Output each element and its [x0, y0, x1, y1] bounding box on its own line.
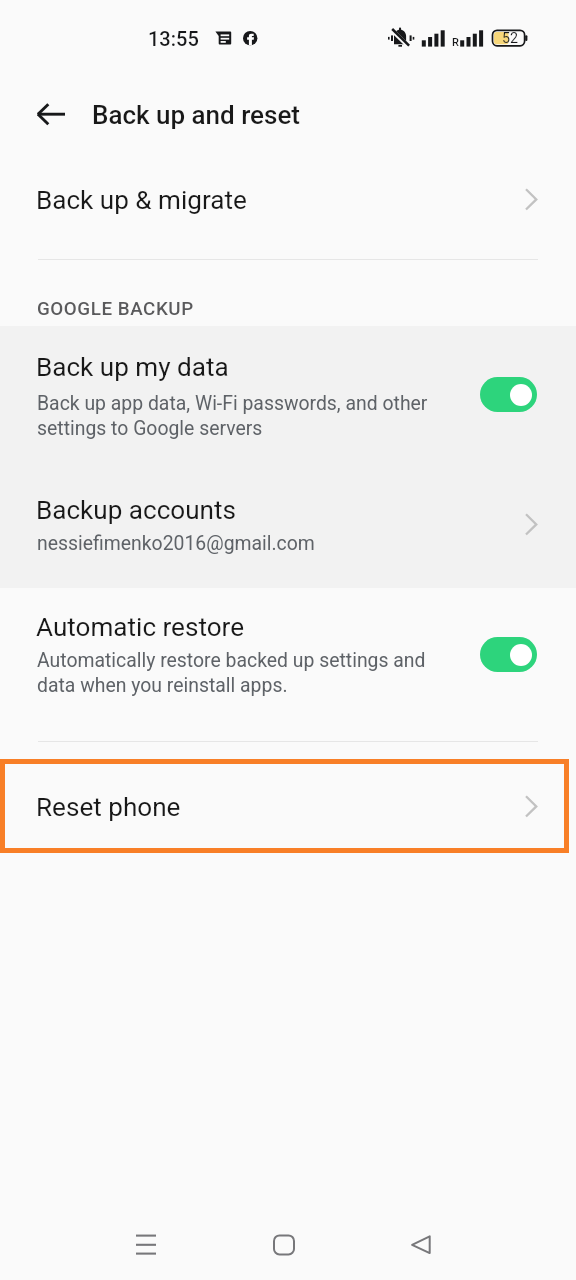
- staticText: Back up my data: [36, 352, 229, 383]
- staticText: Back up & migrate: [36, 185, 247, 216]
- button[interactable]: Backup accounts: [0, 478, 576, 574]
- button[interactable]: Back up & migrate: [0, 160, 576, 242]
- staticText: Back up and reset: [92, 100, 300, 130]
- button[interactable]: Navigate up: [28, 92, 74, 138]
- staticText: R: [452, 36, 459, 49]
- staticText: Reset phone: [36, 792, 181, 823]
- staticText: Automatically restore backed up settings…: [37, 647, 426, 697]
- button[interactable]: Toggle on: [480, 637, 537, 672]
- button[interactable]: Toggle on: [480, 377, 537, 412]
- staticText: 52: [502, 30, 519, 47]
- staticText: 13:55: [148, 27, 199, 50]
- button[interactable]: Recent apps: [114, 1213, 178, 1277]
- staticText: nessiefimenko2016@gmail.com: [37, 532, 315, 555]
- staticText: Backup accounts: [36, 495, 237, 526]
- button[interactable]: Back: [389, 1213, 453, 1277]
- button[interactable]: Back up my data: [0, 334, 576, 460]
- staticText: GOOGLE BACKUP: [37, 298, 194, 320]
- button[interactable]: Reset phone: [5, 764, 564, 848]
- button[interactable]: Home: [252, 1213, 316, 1277]
- staticText: Back up app data, Wi-Fi passwords, and o…: [37, 390, 428, 440]
- staticText: Automatic restore: [36, 612, 245, 643]
- button[interactable]: Automatic restore: [0, 596, 576, 718]
